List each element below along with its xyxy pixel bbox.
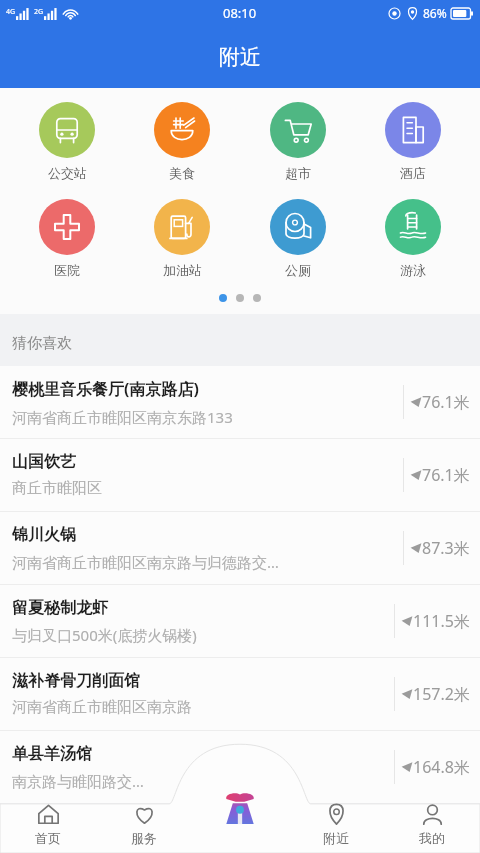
button[interactable]: 樱桃里音乐餐厅(南京路店) [0, 366, 480, 438]
staticText: 76.1米 [422, 391, 470, 413]
staticText: 与归叉口500米(底捞火锅楼) [12, 625, 197, 645]
staticText: 猜你喜欢 [12, 334, 72, 353]
button[interactable]: 游泳 [365, 197, 461, 280]
button[interactable]: 公厕 [250, 197, 346, 280]
staticText: 公厕 [285, 262, 311, 278]
staticText: 留夏秘制龙虾 [12, 598, 108, 618]
staticText: 游泳 [400, 262, 426, 278]
staticText: 76.1米 [422, 464, 470, 486]
staticText: 滋补脊骨刀削面馆 [12, 671, 140, 691]
button[interactable]: 锦川火锅 [0, 512, 480, 584]
button[interactable]: 我的 [384, 790, 480, 853]
staticText: 2G [34, 7, 44, 17]
staticText: 公交站 [48, 165, 87, 181]
staticText: 超市 [285, 165, 311, 181]
staticText: 河南省商丘市睢阳区南京路 [12, 698, 192, 717]
staticText: 164.8米 [413, 756, 470, 778]
button[interactable]: 单县羊汤馆 [0, 731, 480, 803]
staticText: 樱桃里音乐餐厅(南京路店) [12, 378, 199, 400]
staticText: 86% [423, 5, 447, 21]
button[interactable]: 附近 [288, 790, 384, 853]
button[interactable]: 美食 [134, 100, 230, 183]
staticText: 111.5米 [413, 610, 470, 632]
button[interactable]: 公交站 [19, 100, 115, 183]
button[interactable]: Center action [219, 788, 261, 830]
staticText: 河南省商丘市睢阳区南京东路133 [12, 407, 233, 427]
button[interactable]: 超市 [250, 100, 346, 183]
staticText: 附近 [219, 44, 261, 70]
staticText: 南京路与睢阳路交… [12, 771, 144, 791]
staticText: 山国饮艺 [12, 452, 76, 472]
staticText: 157.2米 [413, 683, 470, 705]
staticText: 08:10 [223, 4, 257, 22]
staticText: 锦川火锅 [12, 525, 76, 545]
staticText: 河南省商丘市睢阳区南京路与归德路交… [12, 552, 279, 572]
staticText: 我的 [419, 830, 445, 846]
staticText: 首页 [35, 830, 61, 846]
button[interactable]: 首页 [0, 790, 96, 853]
button[interactable]: 滋补脊骨刀削面馆 [0, 658, 480, 730]
button[interactable]: 医院 [19, 197, 115, 280]
button[interactable]: 服务 [96, 790, 192, 853]
staticText: 4G [6, 7, 16, 17]
staticText: 87.3米 [422, 537, 470, 559]
staticText: 单县羊汤馆 [12, 744, 92, 764]
button[interactable]: 酒店 [365, 100, 461, 183]
staticText: 加油站 [163, 262, 202, 278]
staticText: 酒店 [400, 165, 426, 181]
button[interactable]: 加油站 [134, 197, 230, 280]
staticText: 医院 [54, 262, 80, 278]
staticText: 服务 [131, 830, 157, 846]
staticText: 商丘市睢阳区 [12, 479, 102, 498]
button[interactable]: 山国饮艺 [0, 439, 480, 511]
staticText: 美食 [169, 165, 195, 181]
staticText: 附近 [323, 830, 349, 846]
button[interactable]: 留夏秘制龙虾 [0, 585, 480, 657]
